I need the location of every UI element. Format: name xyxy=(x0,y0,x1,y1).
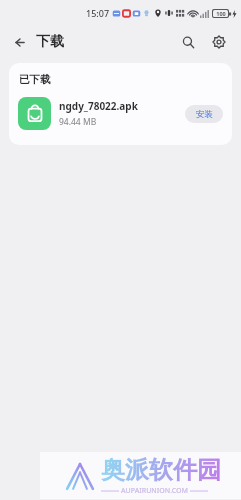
button[interactable]: Back xyxy=(9,31,31,53)
staticText: 94.44 MB xyxy=(59,116,97,128)
staticText: ngdy_78022.apk xyxy=(59,99,138,113)
button[interactable]: ngdy_78022.apk xyxy=(18,97,223,130)
staticText: 安装 xyxy=(196,109,213,120)
button[interactable]: Search xyxy=(176,30,200,54)
staticText: 15:07 xyxy=(86,7,110,19)
staticText: AUPAIRUNION.COM xyxy=(121,486,188,496)
staticText: 100 xyxy=(216,10,226,17)
button[interactable]: 安装 xyxy=(185,105,223,123)
staticText: 奥派软件园 xyxy=(101,455,221,485)
button[interactable]: Settings xyxy=(207,30,231,54)
staticText: 下载 xyxy=(36,33,64,51)
staticText: 已下载 xyxy=(19,73,51,86)
